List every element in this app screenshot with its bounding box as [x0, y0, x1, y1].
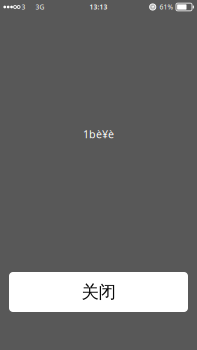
staticText: 3G [35, 3, 44, 11]
staticText: 关闭 [81, 281, 115, 303]
staticText: 1bè¥è [83, 127, 114, 141]
staticText: 13:13 [89, 3, 107, 11]
staticText: 3 [21, 3, 25, 11]
staticText: 61% [159, 3, 173, 11]
button[interactable]: 关闭 [9, 272, 188, 312]
